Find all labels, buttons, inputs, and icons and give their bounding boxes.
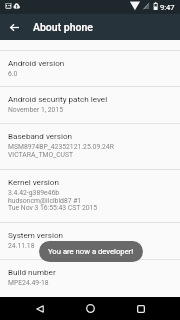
staticText: Android version [8, 58, 65, 67]
staticText: 6.0 [8, 70, 18, 78]
button[interactable]: Kernel version [0, 170, 180, 222]
staticText: You are now a developer! [48, 247, 134, 256]
button[interactable]: Android version [0, 51, 180, 86]
staticText: 9:47 [160, 3, 175, 12]
staticText: Baseband version [8, 131, 73, 140]
staticText: System version [8, 230, 63, 239]
staticText: Kernel version [8, 177, 59, 186]
button[interactable]: Home [72, 297, 109, 320]
button[interactable]: Navigate up [0, 14, 28, 40]
button[interactable]: Baseband version [0, 124, 180, 169]
staticText: MPE24.49-18 [8, 279, 49, 287]
button[interactable]: Android security patch level [0, 87, 180, 123]
staticText: MSM8974BP_42352121.25.09.24R VICTARA_TMO… [8, 143, 114, 158]
button[interactable]: Back [21, 297, 58, 320]
staticText: Build number [8, 267, 56, 276]
staticText: Android security patch level [8, 94, 108, 103]
button[interactable]: Recent apps [122, 297, 159, 320]
staticText: About phone [33, 21, 93, 33]
button[interactable]: Build number [0, 260, 180, 296]
staticText: November 1, 2015 [8, 106, 64, 114]
staticText: 24.11.18 [8, 242, 35, 250]
button[interactable]: System version [0, 223, 180, 259]
staticText: 3.4.42-g389e46b hudsoncm@ilclbld87 #1 Tu… [8, 189, 98, 211]
